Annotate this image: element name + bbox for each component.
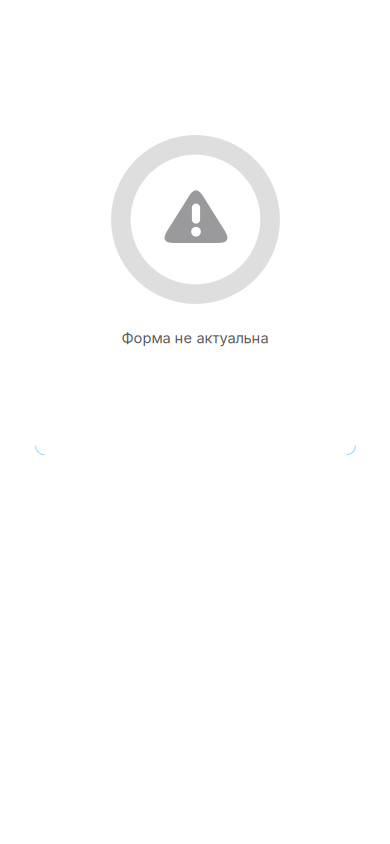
button[interactable]: Действие bbox=[35, 411, 356, 455]
staticText: Форма не актуальна bbox=[121, 329, 268, 347]
